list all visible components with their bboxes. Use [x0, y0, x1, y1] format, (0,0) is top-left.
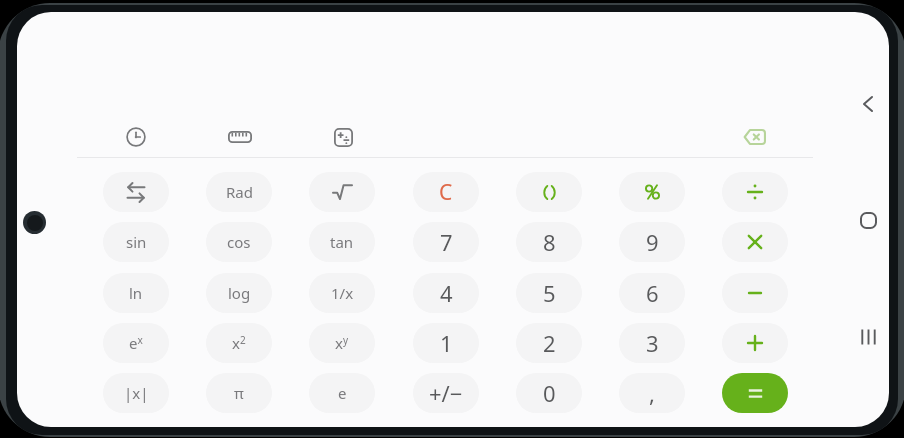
- button[interactable]: 2: [516, 323, 582, 363]
- button[interactable]: π: [206, 373, 272, 413]
- staticText: 0: [543, 378, 556, 408]
- button[interactable]: ,: [619, 373, 685, 413]
- staticText: 2: [543, 328, 556, 358]
- button[interactable]: ln: [103, 273, 169, 313]
- button[interactable]: Home: [847, 199, 889, 241]
- button[interactable]: cos: [206, 222, 272, 262]
- button[interactable]: 8: [516, 222, 582, 262]
- button[interactable]: xy: [309, 323, 375, 363]
- staticText: |x|: [124, 383, 149, 403]
- button[interactable]: 1: [413, 323, 479, 363]
- staticText: 4: [440, 278, 453, 308]
- button[interactable]: Unit converter: [213, 120, 267, 154]
- staticText: Rad: [226, 182, 253, 202]
- staticText: π: [234, 383, 244, 403]
- button[interactable]: 3: [619, 323, 685, 363]
- button[interactable]: History: [109, 120, 163, 154]
- button[interactable]: 4: [413, 273, 479, 313]
- button[interactable]: 7: [413, 222, 479, 262]
- button[interactable]: +/−: [413, 373, 479, 413]
- button[interactable]: Back: [847, 83, 889, 125]
- button[interactable]: Square root: [309, 172, 375, 212]
- button[interactable]: 1/x: [309, 273, 375, 313]
- staticText: 9: [646, 227, 659, 257]
- staticText: 6: [646, 278, 659, 308]
- button[interactable]: Divide: [722, 172, 788, 212]
- staticText: 1: [440, 328, 453, 358]
- staticText: e: [338, 383, 347, 403]
- button[interactable]: Calculator mode: [316, 120, 370, 154]
- button[interactable]: Rad: [206, 172, 272, 212]
- button[interactable]: C: [413, 172, 479, 212]
- staticText: C: [439, 178, 453, 207]
- staticText: ,: [649, 378, 655, 408]
- button[interactable]: Percent: [619, 172, 685, 212]
- button[interactable]: 0: [516, 373, 582, 413]
- button[interactable]: x2: [206, 323, 272, 363]
- button[interactable]: 9: [619, 222, 685, 262]
- button[interactable]: Plus: [722, 323, 788, 363]
- button[interactable]: Recents: [847, 316, 889, 358]
- button[interactable]: Minus: [722, 273, 788, 313]
- staticText: ex: [129, 333, 143, 353]
- staticText: 5: [543, 278, 556, 308]
- button[interactable]: Swap: [103, 172, 169, 212]
- staticText: tan: [330, 232, 354, 252]
- button[interactable]: sin: [103, 222, 169, 262]
- button[interactable]: |x|: [103, 373, 169, 413]
- button[interactable]: Backspace: [727, 120, 781, 154]
- staticText: ln: [129, 283, 143, 303]
- staticText: log: [228, 283, 251, 303]
- staticText: 1/x: [331, 283, 354, 303]
- button[interactable]: Parentheses: [516, 172, 582, 212]
- staticText: sin: [126, 232, 147, 252]
- staticText: x2: [232, 333, 246, 353]
- button[interactable]: 6: [619, 273, 685, 313]
- button[interactable]: 5: [516, 273, 582, 313]
- button[interactable]: log: [206, 273, 272, 313]
- button[interactable]: Multiply: [722, 222, 788, 262]
- staticText: +/−: [429, 378, 463, 408]
- button[interactable]: Equals: [722, 373, 788, 413]
- staticText: 7: [440, 227, 453, 257]
- button[interactable]: tan: [309, 222, 375, 262]
- button[interactable]: e: [309, 373, 375, 413]
- staticText: 8: [543, 227, 556, 257]
- staticText: cos: [227, 232, 251, 252]
- staticText: xy: [335, 333, 349, 353]
- staticText: 3: [646, 328, 659, 358]
- button[interactable]: ex: [103, 323, 169, 363]
